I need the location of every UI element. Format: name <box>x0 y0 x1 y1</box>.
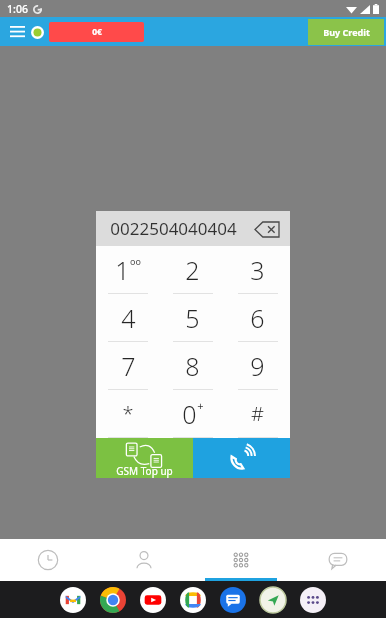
button[interactable]: All apps <box>300 587 326 613</box>
button[interactable]: GSM Top up <box>96 438 193 478</box>
staticText: 6 <box>250 301 265 335</box>
staticText: 0€ <box>92 26 102 38</box>
button[interactable]: 4 <box>96 294 160 341</box>
button[interactable]: 2 <box>160 246 225 293</box>
staticText: Buy Credit <box>323 26 370 38</box>
staticText: + <box>197 398 204 413</box>
staticText: 2 <box>185 253 200 287</box>
button[interactable]: Maps <box>260 587 286 613</box>
button[interactable]: 7 <box>96 342 160 389</box>
button[interactable]: Dialpad <box>192 539 289 581</box>
button[interactable]: # <box>225 390 290 437</box>
staticText: 7 <box>121 349 136 383</box>
button[interactable]: 8 <box>160 342 225 389</box>
button[interactable]: Gmail <box>60 587 86 613</box>
button[interactable]: YouTube <box>140 587 166 613</box>
button[interactable]: Menu <box>6 21 28 43</box>
staticText: 1 <box>115 253 130 287</box>
button[interactable]: 5 <box>160 294 225 341</box>
button[interactable]: Call <box>193 438 290 478</box>
staticText: 4 <box>121 301 136 335</box>
staticText: 5 <box>185 301 200 335</box>
button[interactable]: Contacts <box>96 539 192 581</box>
staticText: 0022504040404 <box>110 217 237 240</box>
button[interactable]: 9 <box>225 342 290 389</box>
button[interactable]: 3 <box>225 246 290 293</box>
staticText: GSM Top up <box>116 464 173 478</box>
button[interactable]: 6 <box>225 294 290 341</box>
button[interactable]: Chrome <box>100 587 126 613</box>
staticText: 8 <box>185 349 200 383</box>
staticText: 9 <box>250 349 265 383</box>
button[interactable]: Messages <box>289 539 386 581</box>
button[interactable]: Messages <box>220 587 246 613</box>
button[interactable]: Backspace <box>254 220 280 238</box>
button[interactable]: 0€ <box>49 22 144 42</box>
staticText: * <box>122 400 134 427</box>
button[interactable]: Photos <box>180 587 206 613</box>
button[interactable] <box>31 26 44 39</box>
button[interactable]: * <box>96 390 160 437</box>
button[interactable]: Buy Credit <box>308 19 384 45</box>
button[interactable]: 0 <box>160 390 225 437</box>
staticText: 1:06 <box>7 2 28 16</box>
staticText: 3 <box>250 253 265 287</box>
button[interactable]: 1 <box>96 246 160 293</box>
staticText: oo <box>130 255 141 267</box>
staticText: # <box>251 400 264 427</box>
staticText: 0 <box>182 397 197 431</box>
button[interactable]: Recent calls <box>0 539 96 581</box>
